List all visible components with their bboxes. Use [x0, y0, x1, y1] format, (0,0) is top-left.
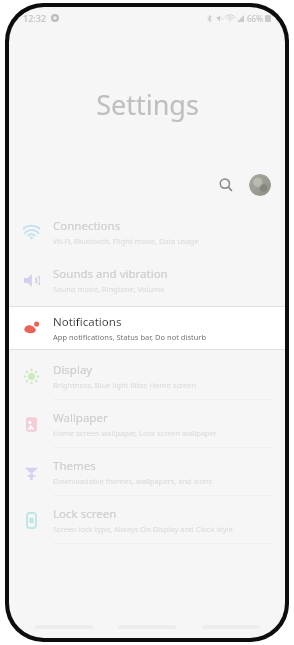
- staticText: Brightness, Blue light filter, Home scre…: [53, 380, 197, 390]
- staticText: Wallpaper: [53, 410, 108, 426]
- button[interactable]: Notifications: [9, 307, 285, 349]
- button[interactable]: Account: [249, 174, 271, 196]
- staticText: 66%: [247, 13, 263, 24]
- button[interactable]: Sounds and vibration: [9, 256, 285, 304]
- staticText: Downloadable themes, wallpapers, and ico…: [53, 476, 212, 486]
- button[interactable]: Search: [211, 170, 241, 200]
- staticText: Themes: [53, 458, 96, 474]
- staticText: Display: [53, 362, 93, 378]
- button[interactable]: Connections: [9, 208, 285, 256]
- staticText: 12:32: [23, 12, 47, 24]
- button[interactable]: Wallpaper: [9, 400, 285, 448]
- button[interactable]: Lock screen: [9, 496, 285, 544]
- staticText: Home screen wallpaper, Lock screen wallp…: [53, 428, 217, 438]
- button[interactable]: Display: [9, 352, 285, 400]
- staticText: Screen lock type, Always On Display and …: [53, 524, 233, 534]
- staticText: Sounds and vibration: [53, 266, 168, 282]
- staticText: App notifications, Status bar, Do not di…: [53, 332, 207, 342]
- staticText: Sound mode, Ringtone, Volume: [53, 284, 165, 294]
- staticText: Notifications: [53, 314, 122, 330]
- staticText: Settings: [96, 86, 199, 123]
- staticText: Wi-Fi, Bluetooth, Flight mode, Data usag…: [53, 236, 199, 246]
- staticText: Lock screen: [53, 506, 117, 522]
- button[interactable]: Themes: [9, 448, 285, 496]
- staticText: Connections: [53, 218, 121, 234]
